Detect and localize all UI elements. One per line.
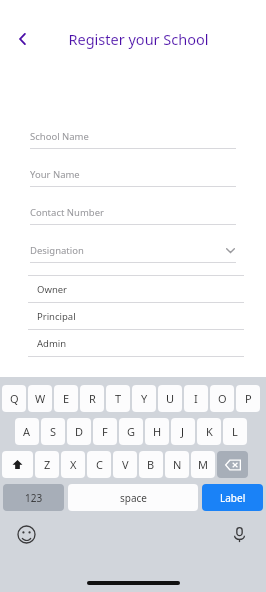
staticText: Label: [220, 491, 246, 505]
button[interactable]: Designation: [30, 244, 236, 263]
staticText: L: [232, 424, 238, 439]
button[interactable]: A: [15, 418, 39, 445]
button[interactable]: O: [210, 385, 234, 412]
button[interactable]: T: [106, 385, 130, 412]
staticText: Your Name: [30, 168, 80, 181]
button[interactable]: Y: [132, 385, 156, 412]
button[interactable]: P: [236, 385, 260, 412]
button[interactable]: Back: [6, 22, 40, 56]
button[interactable]: L: [223, 418, 247, 445]
button[interactable]: B: [139, 451, 163, 478]
staticText: B: [147, 457, 155, 472]
button[interactable]: J: [171, 418, 195, 445]
staticText: 123: [25, 491, 43, 505]
staticText: F: [102, 424, 108, 439]
staticText: Owner: [37, 283, 68, 296]
staticText: E: [63, 391, 70, 406]
staticText: U: [166, 391, 175, 406]
staticText: Designation: [30, 244, 84, 257]
staticText: D: [75, 424, 84, 439]
staticText: V: [122, 457, 129, 472]
staticText: A: [23, 424, 31, 439]
staticText: space: [120, 491, 147, 505]
staticText: J: [181, 424, 185, 439]
staticText: W: [35, 391, 46, 406]
button[interactable]: Q: [2, 385, 26, 412]
button[interactable]: H: [145, 418, 169, 445]
staticText: Contact Number: [30, 206, 104, 219]
staticText: K: [206, 424, 213, 439]
staticText: N: [173, 457, 182, 472]
button[interactable]: D: [67, 418, 91, 445]
staticText: R: [89, 391, 96, 406]
button[interactable]: School Name: [30, 130, 236, 149]
staticText: O: [218, 391, 227, 406]
button[interactable]: R: [80, 385, 104, 412]
button[interactable]: Principal: [28, 303, 244, 329]
staticText: Admin: [37, 337, 67, 350]
button[interactable]: Shift: [2, 451, 33, 478]
staticText: H: [153, 424, 162, 439]
button[interactable]: W: [28, 385, 52, 412]
button[interactable]: I: [184, 385, 208, 412]
button[interactable]: Your Name: [30, 168, 236, 187]
button[interactable]: Backspace: [217, 451, 248, 478]
button[interactable]: space: [68, 484, 198, 511]
button[interactable]: Emoji: [17, 525, 36, 544]
button[interactable]: Admin: [28, 330, 244, 356]
button[interactable]: Dictate: [230, 525, 249, 544]
staticText: Q: [10, 391, 19, 406]
staticText: X: [70, 457, 77, 472]
button[interactable]: Z: [35, 451, 59, 478]
button[interactable]: Owner: [28, 276, 244, 302]
staticText: Register your School: [68, 29, 209, 49]
button[interactable]: C: [87, 451, 111, 478]
staticText: I: [194, 391, 198, 406]
staticText: G: [127, 424, 136, 439]
button[interactable]: M: [191, 451, 215, 478]
button[interactable]: V: [113, 451, 137, 478]
button[interactable]: Contact Number: [30, 206, 236, 225]
button[interactable]: X: [61, 451, 85, 478]
button[interactable]: F: [93, 418, 117, 445]
staticText: C: [96, 457, 103, 472]
staticText: T: [115, 391, 122, 406]
button[interactable]: Label: [202, 484, 263, 511]
button[interactable]: K: [197, 418, 221, 445]
staticText: Principal: [37, 310, 76, 323]
staticText: Y: [141, 391, 148, 406]
staticText: Z: [44, 457, 51, 472]
button[interactable]: U: [158, 385, 182, 412]
button[interactable]: E: [54, 385, 78, 412]
staticText: M: [198, 457, 208, 472]
staticText: P: [245, 391, 252, 406]
staticText: S: [50, 424, 57, 439]
staticText: School Name: [30, 130, 89, 143]
button[interactable]: G: [119, 418, 143, 445]
button[interactable]: 123: [3, 484, 64, 511]
button[interactable]: S: [41, 418, 65, 445]
button[interactable]: N: [165, 451, 189, 478]
